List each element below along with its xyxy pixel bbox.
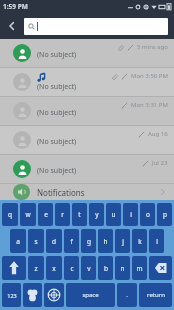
button[interactable]: b xyxy=(98,256,113,280)
button[interactable]: j xyxy=(115,229,130,253)
button[interactable]: Change language xyxy=(44,283,64,307)
button[interactable]: return xyxy=(139,283,172,307)
staticText: g xyxy=(87,237,91,246)
button[interactable]: e xyxy=(38,203,53,226)
button[interactable]: k xyxy=(132,229,147,253)
staticText: Notifications xyxy=(37,187,85,198)
button[interactable]: Emoji xyxy=(23,283,42,307)
staticText: d xyxy=(52,237,56,246)
staticText: v xyxy=(87,264,91,273)
staticText: space xyxy=(82,291,99,299)
button[interactable]: m xyxy=(132,256,147,280)
button[interactable]: g xyxy=(81,229,96,253)
button[interactable]: z xyxy=(28,256,44,280)
button[interactable]: t xyxy=(72,203,87,226)
button[interactable]: Notifications xyxy=(0,184,174,200)
staticText: f xyxy=(70,237,73,246)
staticText: (No subject) xyxy=(37,50,77,60)
button[interactable]: x xyxy=(46,256,62,280)
staticText: (No subject) xyxy=(37,137,77,147)
staticText: k xyxy=(138,237,142,246)
staticText: y xyxy=(95,210,99,219)
staticText: b xyxy=(104,264,108,273)
staticText: (No subject) xyxy=(37,82,77,92)
staticText: a xyxy=(16,237,20,246)
button[interactable]: r xyxy=(55,203,70,226)
staticText: h xyxy=(103,237,108,246)
button[interactable] xyxy=(24,18,168,35)
staticText: m xyxy=(136,264,143,273)
staticText: 1:59 PM xyxy=(3,2,28,11)
staticText: . xyxy=(126,291,128,299)
staticText: (No subject) xyxy=(37,166,77,176)
staticText: q xyxy=(8,210,12,219)
staticText: j xyxy=(122,237,124,246)
button[interactable]: (No subject) xyxy=(0,155,174,183)
staticText: x xyxy=(52,264,56,273)
button[interactable]: h xyxy=(98,229,113,253)
staticText: s xyxy=(34,237,38,246)
button[interactable]: Shift xyxy=(2,256,26,280)
button[interactable]: f xyxy=(64,229,79,253)
button[interactable]: d xyxy=(46,229,62,253)
button[interactable]: o xyxy=(140,203,155,226)
staticText: (No subject) xyxy=(37,108,77,118)
staticText: p xyxy=(163,210,167,219)
button[interactable]: n xyxy=(115,256,130,280)
staticText: 5 mins ago xyxy=(137,43,168,51)
staticText: i xyxy=(130,210,132,219)
staticText: Jul 23 xyxy=(152,159,168,167)
button[interactable]: c xyxy=(64,256,79,280)
button[interactable]: y xyxy=(89,203,104,226)
button[interactable]: space xyxy=(66,283,115,307)
button[interactable]: p xyxy=(157,203,172,226)
button[interactable]: 123 xyxy=(2,283,21,307)
button[interactable]: u xyxy=(106,203,121,226)
button[interactable]: w xyxy=(20,203,36,226)
button[interactable]: (No subject) xyxy=(0,126,174,154)
button[interactable]: (No subject) xyxy=(0,97,174,125)
staticText: e xyxy=(44,210,48,219)
button[interactable]: (No subject) xyxy=(0,39,174,67)
button[interactable]: q xyxy=(2,203,18,226)
button[interactable]: a xyxy=(10,229,26,253)
staticText: w xyxy=(25,210,31,219)
staticText: n xyxy=(120,264,125,273)
staticText: return xyxy=(147,291,165,299)
staticText: t xyxy=(78,210,81,219)
button[interactable]: v xyxy=(81,256,96,280)
staticText: c xyxy=(70,264,74,273)
button[interactable]: s xyxy=(28,229,44,253)
staticText: l xyxy=(156,237,158,246)
staticText: o xyxy=(146,210,150,219)
button[interactable]: Backspace xyxy=(149,256,172,280)
button[interactable]: (No subject) xyxy=(0,68,174,96)
button[interactable]: l xyxy=(149,229,164,253)
staticText: Mon 3:56 PM xyxy=(131,72,168,80)
staticText: z xyxy=(34,264,38,273)
button[interactable]: i xyxy=(123,203,138,226)
staticText: r xyxy=(61,210,64,219)
staticText: Mon 3:31 PM xyxy=(131,101,168,109)
staticText: 123 xyxy=(7,292,17,299)
staticText: u xyxy=(111,210,116,219)
button[interactable]: . xyxy=(117,283,137,307)
button[interactable]: Back xyxy=(0,13,24,39)
staticText: Aug 16 xyxy=(148,130,168,138)
